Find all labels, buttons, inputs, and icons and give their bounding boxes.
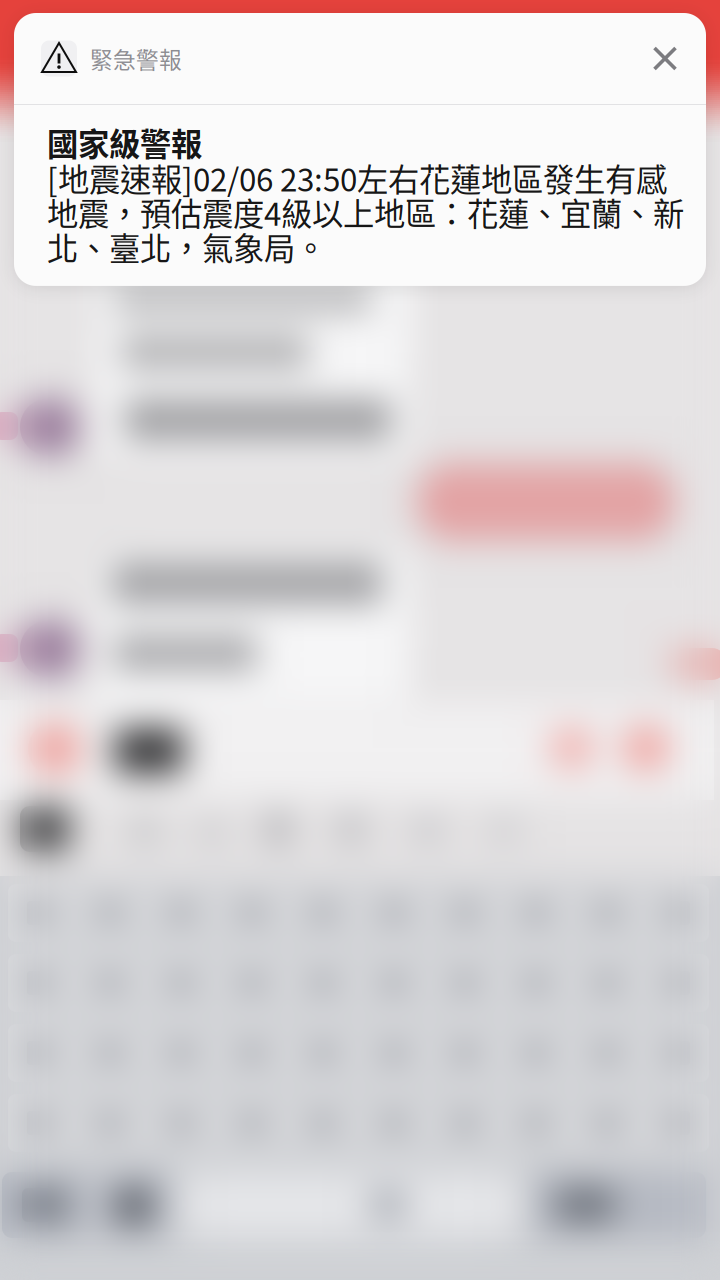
staticText: 國家級警報 <box>47 125 202 159</box>
staticText: [地震速報]02/06 23:50左右花蓮地區發生有感地震，預估震度4級以上地區… <box>47 160 684 264</box>
staticText: 緊急警報 <box>90 42 182 75</box>
button[interactable]: Close alert <box>646 39 684 77</box>
